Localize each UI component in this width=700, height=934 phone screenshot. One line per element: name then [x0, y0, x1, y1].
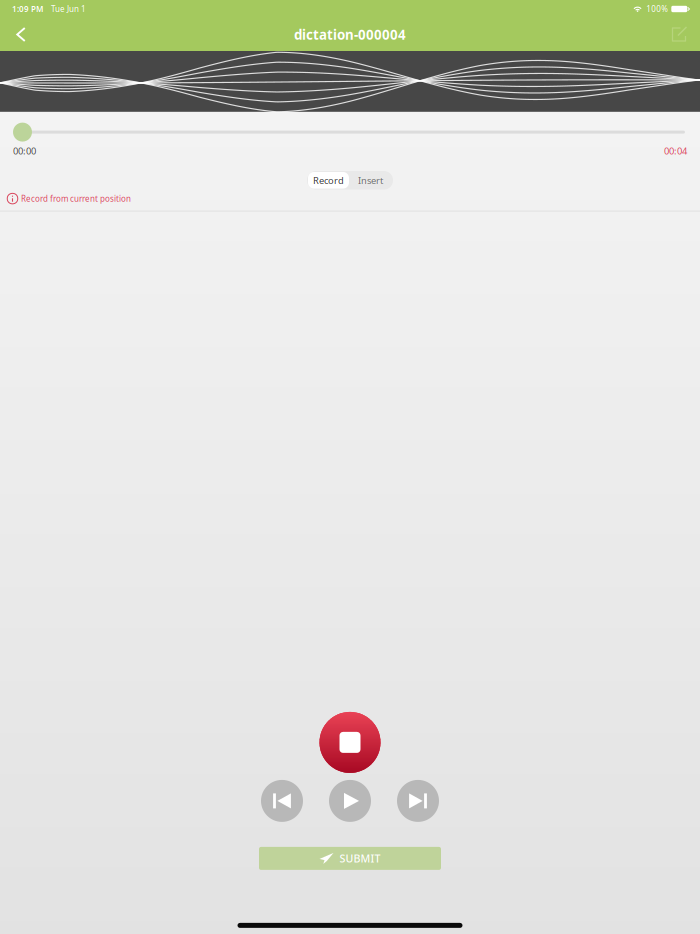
button[interactable]: Edit — [660, 18, 698, 51]
staticText: 00:04 — [664, 145, 687, 157]
staticText: Record — [313, 174, 344, 186]
button[interactable]: Next — [397, 780, 439, 822]
staticText: Tue Jun 1 — [51, 4, 86, 14]
button[interactable]: Previous — [261, 780, 303, 822]
staticText: SUBMIT — [339, 851, 380, 865]
staticText: 100% — [646, 4, 668, 14]
staticText: dictation-000004 — [294, 26, 406, 43]
staticText: 1:09 PM — [12, 4, 43, 14]
button[interactable]: SUBMIT — [259, 847, 441, 870]
button[interactable]: Record — [308, 172, 349, 189]
button[interactable]: Play — [329, 780, 371, 822]
button[interactable]: Back — [2, 18, 40, 51]
staticText: 00:00 — [13, 145, 36, 157]
button[interactable]: Stop recording — [319, 712, 380, 773]
button[interactable]: Insert — [349, 172, 392, 189]
staticText: Insert — [358, 174, 383, 186]
staticText: Record from current position — [21, 193, 131, 204]
